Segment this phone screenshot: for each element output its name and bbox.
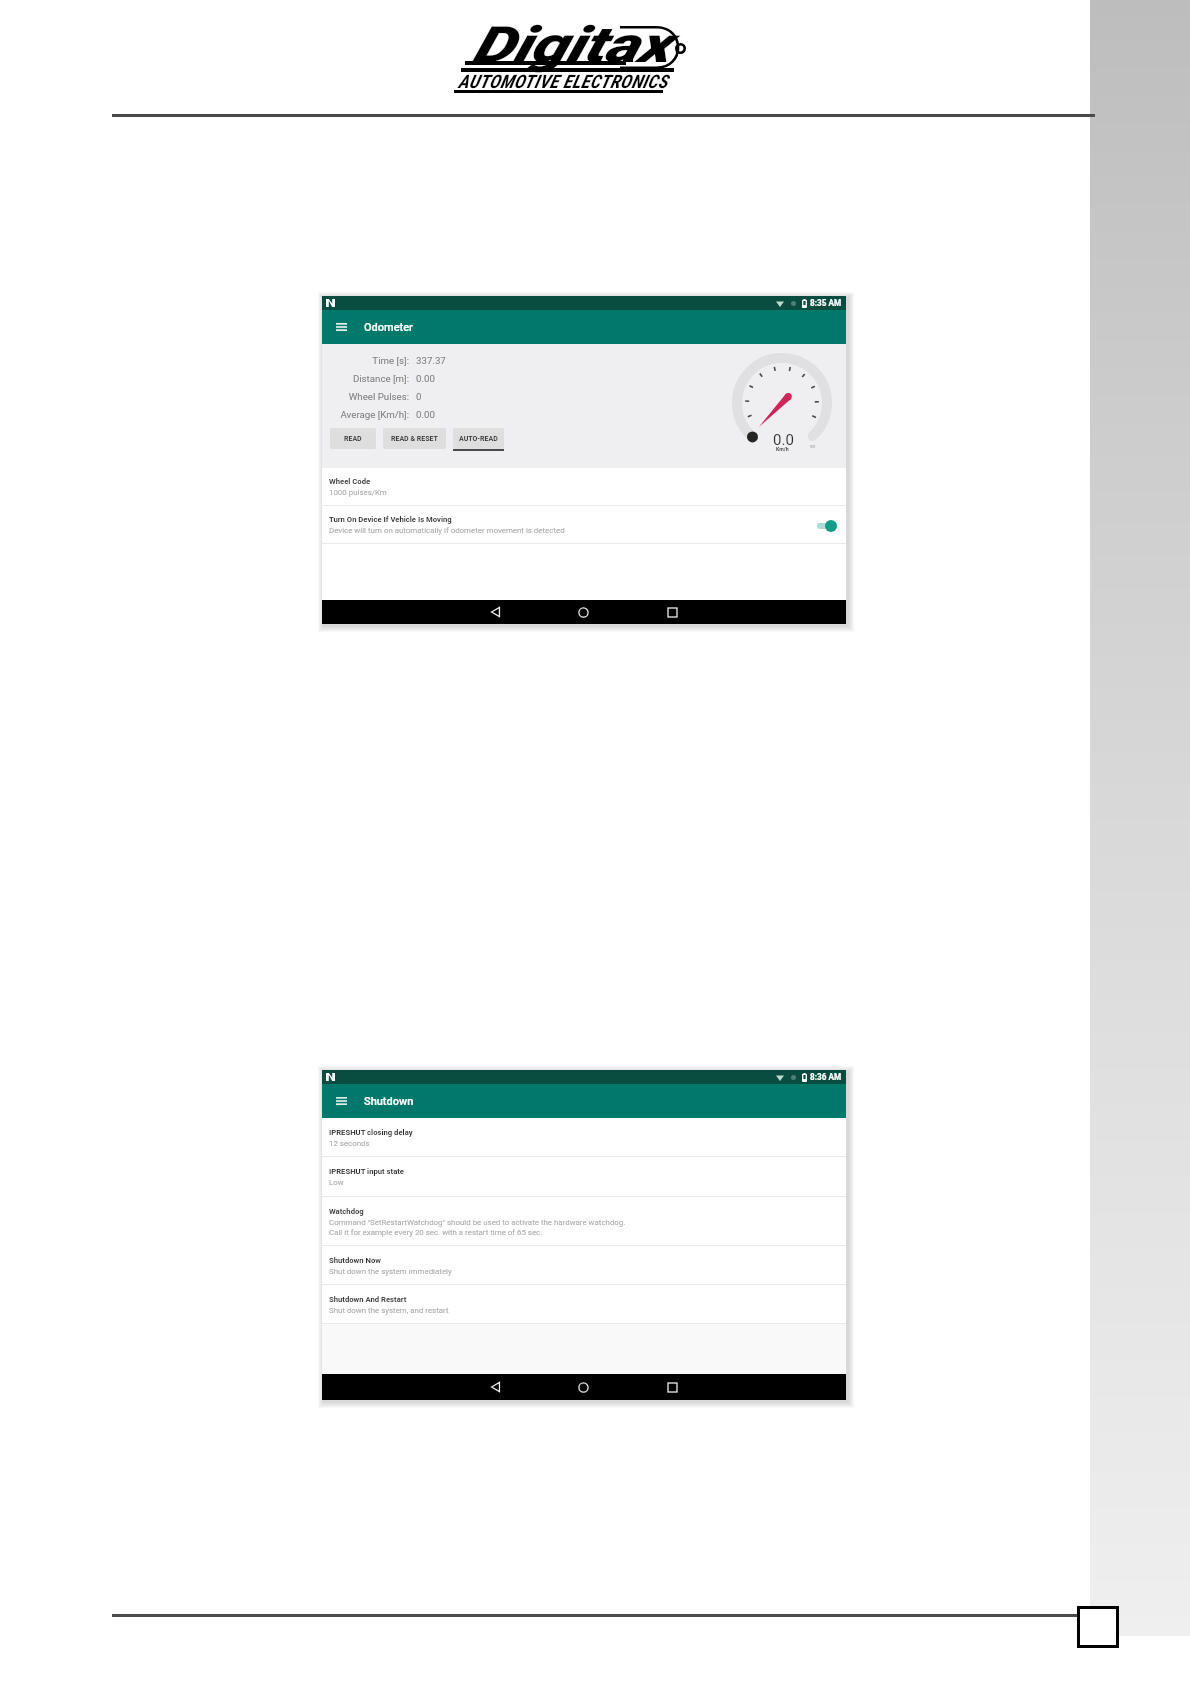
staticText: AUTO-READ [459, 435, 498, 443]
button[interactable]: Recent apps [659, 1374, 685, 1400]
staticText: 8:36 AM [810, 1072, 842, 1082]
staticText: Shut down the system immediately [329, 1267, 452, 1276]
button[interactable]: READ & RESET [383, 428, 446, 449]
button[interactable]: Home [570, 600, 596, 624]
button[interactable]: AUTO-READ [453, 428, 504, 449]
staticText: 1000 pulses/Km [329, 488, 387, 497]
staticText: Shutdown [364, 1095, 414, 1108]
button[interactable]: Open navigation drawer [332, 1092, 350, 1110]
button[interactable]: READ [330, 428, 376, 449]
staticText: 0.0 [773, 431, 794, 449]
staticText: Low [329, 1178, 344, 1187]
button[interactable]: Turn on device if vehicle is moving [811, 517, 841, 535]
button[interactable]: Back [482, 1374, 508, 1400]
staticText: Wheel Code [329, 477, 371, 486]
staticText: READ [344, 435, 362, 443]
button[interactable]: Wheel Code [322, 468, 846, 506]
staticText: IPRESHUT closing delay [329, 1128, 413, 1137]
staticText: Call it for example every 20 sec. with a… [329, 1228, 543, 1237]
staticText: Watchdog [329, 1207, 364, 1216]
button[interactable]: Back [482, 600, 508, 624]
staticText: Command "SetRestartWatchdog" should be u… [329, 1218, 626, 1227]
staticText: 8:35 AM [810, 298, 842, 308]
staticText: 337.37 [416, 355, 446, 366]
staticText: IPRESHUT input state [329, 1167, 405, 1176]
staticText: AUTOMOTIVE ELECTRONICS [458, 71, 668, 93]
button[interactable]: Shutdown Now [322, 1246, 846, 1285]
staticText: Km/h [776, 446, 789, 452]
staticText: Time [s]: [322, 355, 409, 366]
button[interactable]: IPRESHUT input state [322, 1157, 846, 1197]
staticText: READ & RESET [391, 435, 438, 443]
button[interactable]: IPRESHUT closing delay [322, 1118, 846, 1157]
button[interactable]: Turn On Device If Vehicle Is Moving [322, 506, 846, 544]
staticText: Digitax [472, 16, 670, 75]
staticText: 0 [416, 391, 422, 402]
staticText: Average [Km/h]: [322, 409, 409, 420]
staticText: Odometer [364, 321, 413, 334]
staticText: Device will turn on automatically if odo… [329, 526, 565, 535]
staticText: Wheel Pulses: [322, 391, 409, 402]
staticText: Shut down the system, and restart [329, 1306, 449, 1315]
button[interactable]: Shutdown And Restart [322, 1285, 846, 1324]
staticText: Distance [m]: [322, 373, 409, 384]
staticText: 50 [810, 444, 815, 449]
staticText: 12 seconds [329, 1139, 370, 1148]
button[interactable]: Home [570, 1374, 596, 1400]
button[interactable]: Recent apps [659, 600, 685, 624]
staticText: 0.00 [416, 373, 435, 384]
staticText: Turn On Device If Vehicle Is Moving [329, 515, 452, 524]
staticText: Shutdown And Restart [329, 1295, 407, 1304]
button[interactable]: Watchdog [322, 1197, 846, 1246]
staticText: Shutdown Now [329, 1256, 381, 1265]
staticText: 0.00 [416, 409, 435, 420]
button[interactable]: Open navigation drawer [332, 318, 350, 336]
